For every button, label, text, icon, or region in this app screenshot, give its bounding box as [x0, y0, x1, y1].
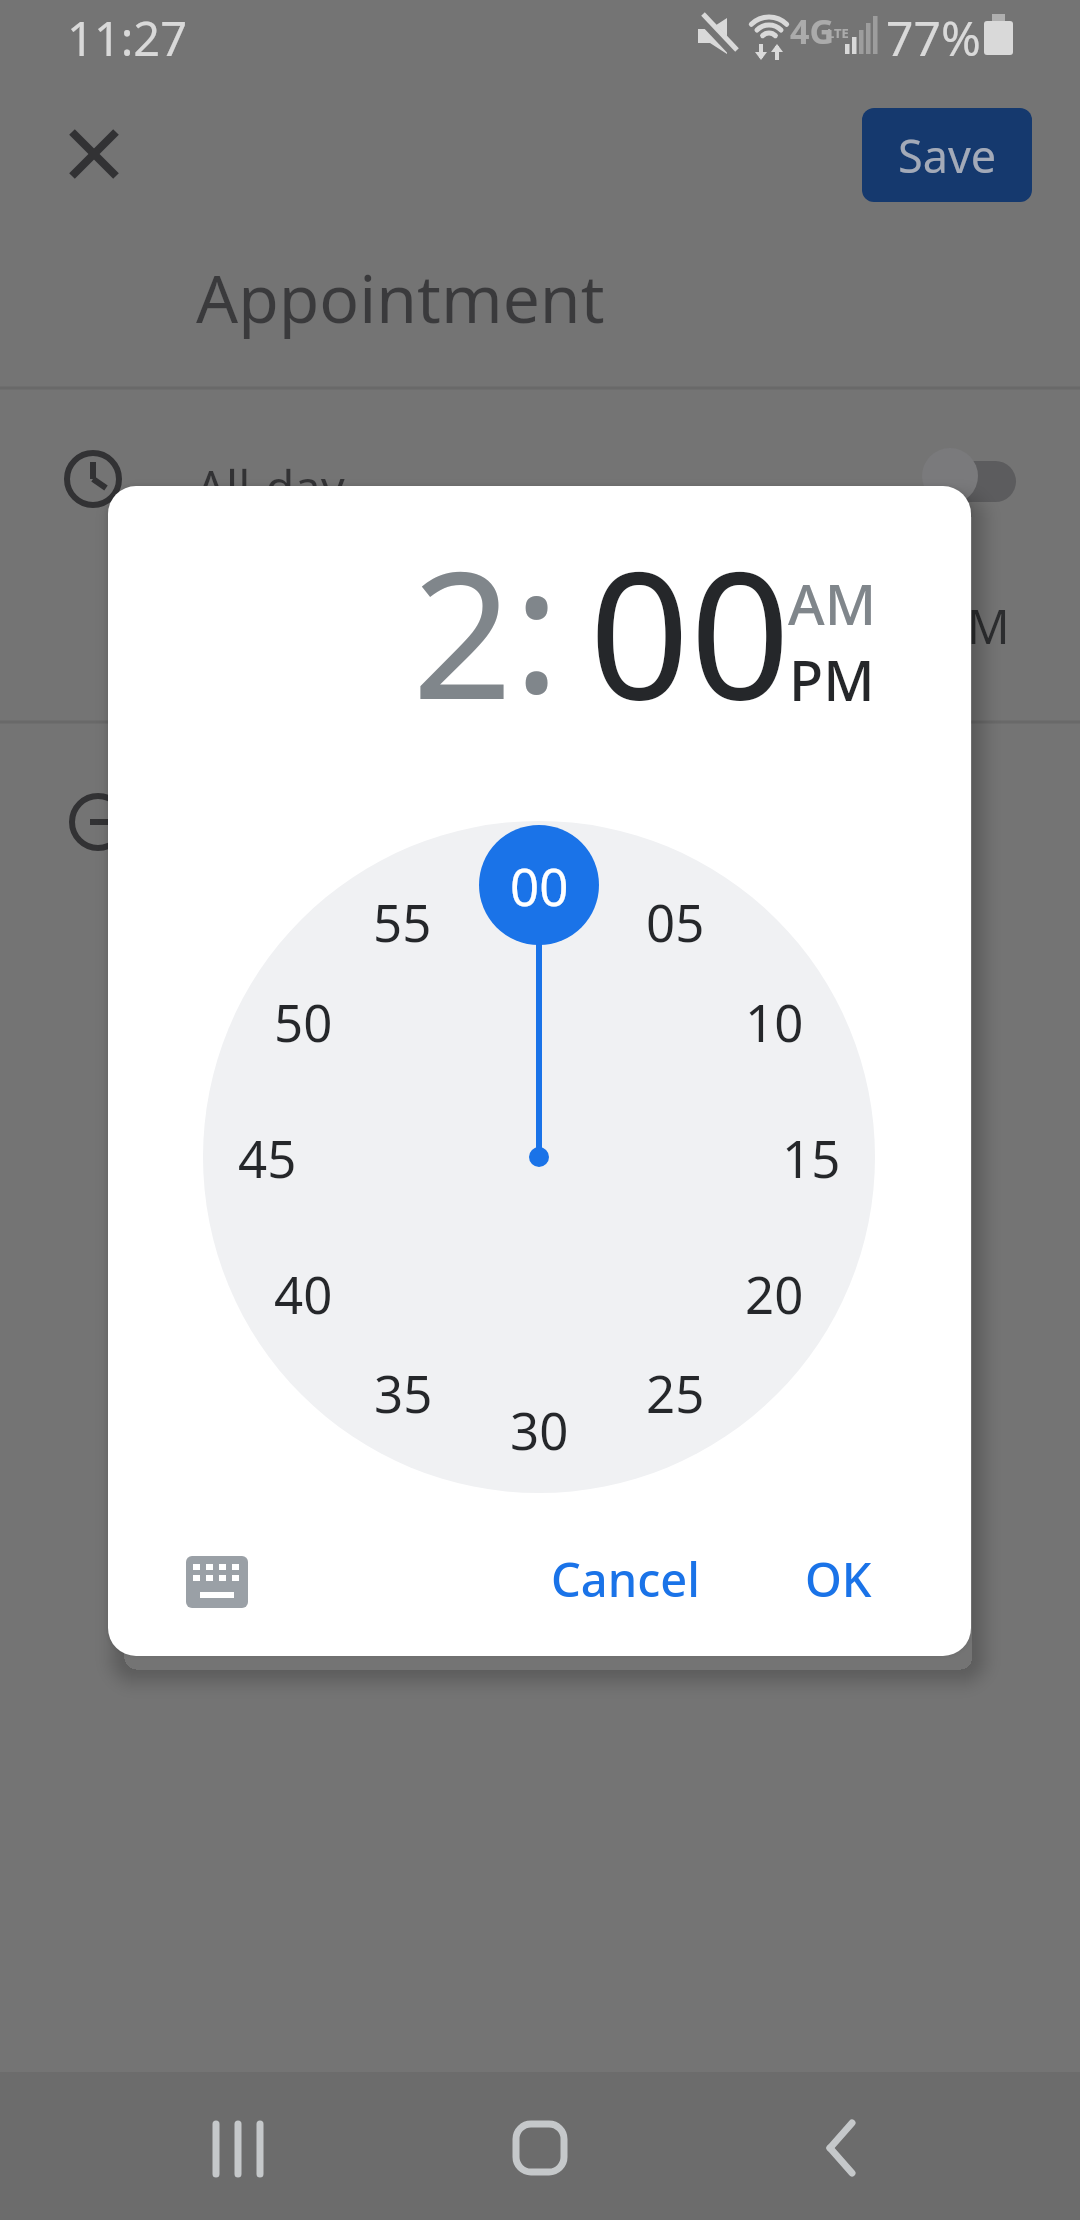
staticText: All-day — [196, 455, 345, 519]
staticText: AM — [788, 565, 877, 641]
staticText: : — [513, 505, 561, 705]
staticText: Cancel — [551, 1547, 700, 1611]
button[interactable] — [790, 2098, 890, 2198]
staticText: 00 — [589, 511, 791, 711]
staticText: 05 — [646, 887, 705, 956]
button[interactable]: PM — [632, 579, 971, 779]
staticText: 40 — [274, 1259, 333, 1328]
staticText: 11:27 — [67, 6, 188, 70]
staticText: 2 — [412, 511, 513, 711]
staticText: PM — [789, 641, 875, 717]
button[interactable]: Cancel — [495, 1524, 755, 1634]
button[interactable] — [490, 2098, 590, 2198]
staticText: LTE — [827, 24, 849, 42]
staticText: 55 — [373, 887, 432, 956]
button[interactable]: AM — [632, 503, 971, 703]
staticText: 15 — [782, 1123, 841, 1192]
staticText: 00 — [510, 851, 569, 920]
staticText: 10 — [745, 987, 804, 1056]
button[interactable] — [58, 118, 130, 190]
staticText: 77% — [886, 5, 981, 70]
button[interactable] — [188, 2098, 288, 2198]
staticText: 25 — [646, 1358, 705, 1427]
button[interactable]: OK — [748, 1524, 928, 1634]
staticText: 30 — [510, 1395, 569, 1464]
staticText: M — [967, 594, 1010, 658]
staticText: OK — [805, 1547, 872, 1611]
staticText: 50 — [274, 987, 333, 1056]
staticText: 45 — [238, 1123, 297, 1192]
button[interactable] — [920, 448, 1020, 508]
staticText: 4G — [790, 8, 835, 54]
button[interactable] — [178, 1548, 256, 1616]
staticText: Appointment — [196, 252, 605, 342]
button[interactable]: Save — [862, 108, 1032, 202]
staticText: 35 — [374, 1358, 433, 1427]
staticText: 20 — [745, 1259, 804, 1328]
staticText: Save — [898, 125, 997, 186]
